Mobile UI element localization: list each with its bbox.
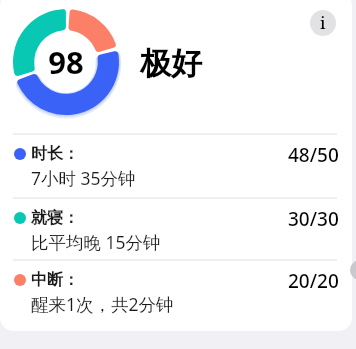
staticText: 20/20 (288, 268, 339, 294)
staticText: 时长： (31, 144, 79, 164)
staticText: 98 (48, 41, 84, 83)
staticText: 极好 (140, 44, 202, 83)
button[interactable]: 就寝： (0, 197, 356, 259)
button[interactable]: Info (310, 10, 336, 36)
staticText: 醒来1次，共2分钟 (31, 292, 174, 316)
staticText: 30/30 (288, 206, 339, 232)
staticText: 比平均晚 15分钟 (31, 230, 161, 254)
staticText: 48/50 (288, 142, 339, 168)
button[interactable]: 时长： (0, 133, 356, 195)
staticText: 中断： (31, 270, 79, 290)
staticText: 就寝： (31, 208, 79, 228)
staticText: 7小时 35分钟 (31, 166, 136, 190)
staticText: i (320, 11, 326, 34)
button[interactable]: 中断： (0, 259, 356, 321)
